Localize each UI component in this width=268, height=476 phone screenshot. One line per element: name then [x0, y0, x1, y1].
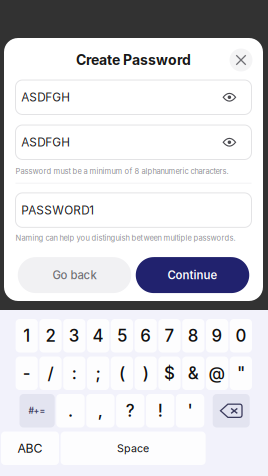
- button[interactable]: 9: [206, 319, 228, 352]
- button[interactable]: ): [135, 356, 157, 390]
- staticText: 1: [23, 326, 30, 346]
- button[interactable]: ;: [87, 356, 109, 390]
- staticText: $: [164, 363, 175, 383]
- staticText: Naming can help you distinguish between …: [15, 233, 235, 243]
- staticText: Continue: [167, 268, 217, 282]
- button[interactable]: ,: [86, 394, 114, 427]
- button[interactable]: ABC: [1, 431, 59, 465]
- staticText: 5: [117, 326, 127, 346]
- staticText: #+=: [29, 406, 46, 416]
- button[interactable]: #+=: [19, 394, 55, 427]
- staticText: PASSWORD1: [21, 203, 94, 217]
- staticText: @: [209, 363, 226, 383]
- staticText: !: [158, 401, 163, 421]
- button[interactable]: 1: [16, 319, 38, 352]
- staticText: 0: [235, 326, 246, 346]
- button[interactable]: ?: [116, 394, 144, 427]
- staticText: ": [237, 363, 245, 383]
- button[interactable]: 3: [63, 319, 85, 352]
- button[interactable]: -: [16, 356, 38, 390]
- button[interactable]: !: [146, 394, 174, 427]
- button[interactable]: ': [176, 394, 204, 427]
- button[interactable]: 8: [182, 319, 204, 352]
- button[interactable]: Delete: [213, 394, 250, 427]
- staticText: ASDFGH: [21, 90, 70, 104]
- button[interactable]: (: [111, 356, 133, 390]
- staticText: Space: [117, 442, 149, 455]
- button[interactable]: ": [230, 356, 252, 390]
- staticText: Go back: [52, 268, 96, 282]
- staticText: ASDFGH: [21, 135, 70, 149]
- button[interactable]: 2: [39, 319, 62, 352]
- staticText: ): [143, 363, 149, 383]
- staticText: &: [188, 363, 199, 383]
- staticText: -: [23, 363, 31, 383]
- button[interactable]: 5: [111, 319, 133, 352]
- button[interactable]: 0: [230, 319, 252, 352]
- button[interactable]: 7: [158, 319, 181, 352]
- staticText: ': [188, 401, 193, 421]
- button[interactable]: .: [56, 394, 85, 427]
- button[interactable]: Space: [61, 431, 206, 465]
- staticText: 6: [140, 326, 151, 346]
- staticText: 9: [212, 326, 223, 346]
- button[interactable]: &: [182, 356, 204, 390]
- button[interactable]: 4: [87, 319, 109, 352]
- button[interactable]: /: [39, 356, 62, 390]
- button[interactable]: PASSWORD1: [15, 193, 251, 227]
- staticText: :: [72, 363, 77, 383]
- staticText: 8: [188, 326, 199, 346]
- staticText: ,: [98, 401, 103, 421]
- button[interactable]: ASDFGH: [15, 80, 251, 114]
- button[interactable]: 6: [135, 319, 157, 352]
- staticText: /: [47, 363, 53, 383]
- staticText: Password must be a minimum of 8 alphanum…: [15, 167, 228, 176]
- button[interactable]: Close: [229, 48, 252, 71]
- staticText: ?: [126, 401, 135, 421]
- button[interactable]: @: [206, 356, 228, 390]
- staticText: 3: [69, 326, 80, 346]
- staticText: ABC: [17, 441, 42, 456]
- button[interactable]: ASDFGH: [15, 125, 251, 159]
- button[interactable]: $: [158, 356, 181, 390]
- staticText: ;: [96, 363, 101, 383]
- staticText: 2: [45, 326, 55, 346]
- staticText: 7: [164, 326, 174, 346]
- button[interactable]: Continue: [136, 257, 249, 293]
- staticText: .: [68, 401, 73, 421]
- staticText: 4: [93, 326, 104, 346]
- button[interactable]: Go back: [18, 257, 131, 293]
- staticText: Create Password: [76, 51, 191, 68]
- button[interactable]: :: [63, 356, 85, 390]
- staticText: (: [119, 363, 125, 383]
